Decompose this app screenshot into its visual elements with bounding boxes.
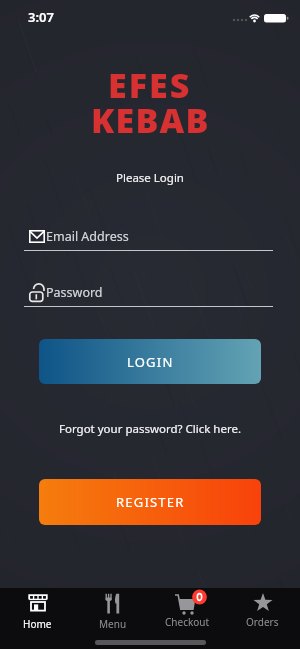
button[interactable]: Menu	[75, 588, 150, 649]
staticText: Checkout	[165, 615, 210, 629]
staticText: Password	[46, 284, 103, 301]
button[interactable]: Forgot your password? Click here.	[59, 421, 242, 437]
button[interactable]: LOGIN	[39, 339, 261, 384]
staticText: REGISTER	[116, 493, 185, 511]
button[interactable]: Email Address	[24, 222, 273, 250]
staticText: Orders	[246, 615, 279, 629]
staticText: Email Address	[46, 228, 129, 245]
button[interactable]: Orders	[225, 588, 300, 649]
button[interactable]: Checkout	[150, 588, 225, 649]
staticText: 3:07	[28, 8, 54, 26]
staticText: Menu	[99, 617, 127, 631]
staticText: Please Login	[116, 170, 184, 186]
button[interactable]: Password	[24, 278, 273, 306]
button[interactable]: REGISTER	[39, 479, 261, 525]
staticText: EFES	[108, 62, 192, 108]
staticText: Home	[23, 617, 52, 631]
staticText: LOGIN	[127, 353, 174, 371]
staticText: KEBAB	[91, 97, 210, 143]
button[interactable]: Home	[0, 588, 75, 649]
